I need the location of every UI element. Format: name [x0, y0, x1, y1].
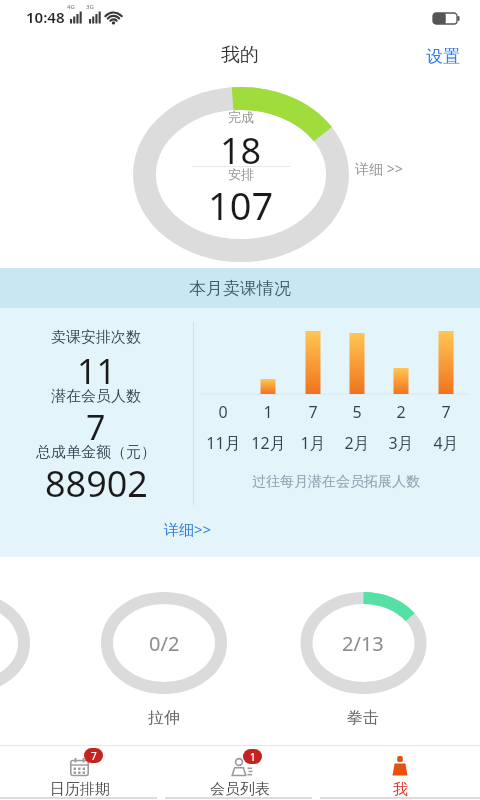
staticText: 总成单金额（元） [36, 443, 156, 462]
staticText: 2/13 [342, 630, 384, 657]
staticText: 7 [308, 401, 318, 421]
staticText: 1 [250, 750, 256, 764]
button[interactable]: 详细 >> [339, 157, 419, 179]
staticText: 过往每月潜在会员拓展人数 [252, 473, 420, 491]
staticText: 11 [77, 348, 116, 388]
staticText: 0/2 [149, 630, 180, 657]
staticText: 5 [352, 401, 362, 421]
staticText: 0 [218, 401, 228, 421]
button[interactable]: 详细>> [148, 517, 228, 541]
staticText: 1 [263, 401, 273, 421]
button[interactable]: 我 [320, 746, 480, 800]
staticText: 7 [441, 401, 451, 421]
staticText: 7 [86, 404, 106, 444]
staticText: 107 [208, 179, 274, 225]
staticText: 2 [396, 401, 406, 421]
staticText: 4月 [433, 432, 459, 452]
staticText: 7 [91, 749, 97, 763]
staticText: 11月 [206, 432, 241, 452]
staticText: 日历排期 [50, 780, 110, 799]
staticText: 拉伸 [148, 708, 180, 728]
staticText: 10:48 [26, 7, 65, 27]
staticText: 拳击 [347, 708, 379, 728]
staticText: 潜在会员人数 [51, 387, 141, 406]
button[interactable]: 设置 [414, 41, 472, 71]
staticText: 设置 [426, 46, 460, 67]
button[interactable]: 2/13 [308, 629, 418, 657]
staticText: 3G [86, 3, 94, 11]
button[interactable]: 1 [160, 746, 320, 800]
staticText: 完成 [228, 109, 254, 125]
button[interactable]: 7 [0, 746, 160, 800]
staticText: 会员列表 [210, 780, 270, 799]
staticText: 2月 [344, 432, 370, 452]
button[interactable]: 0/2 [109, 629, 219, 657]
staticText: 本月卖课情况 [189, 278, 291, 299]
staticText: 1月 [300, 432, 326, 452]
staticText: 18 [220, 126, 262, 168]
staticText: 详细>> [164, 519, 212, 539]
staticText: 卖课安排次数 [51, 328, 141, 347]
staticText: 我 [393, 780, 408, 799]
staticText: 详细 >> [355, 159, 403, 178]
staticText: 88902 [45, 459, 148, 501]
staticText: 12月 [251, 432, 286, 452]
staticText: 4G [67, 3, 75, 11]
staticText: 我的 [221, 43, 259, 67]
staticText: 安排 [228, 166, 254, 182]
staticText: 3月 [388, 432, 414, 452]
